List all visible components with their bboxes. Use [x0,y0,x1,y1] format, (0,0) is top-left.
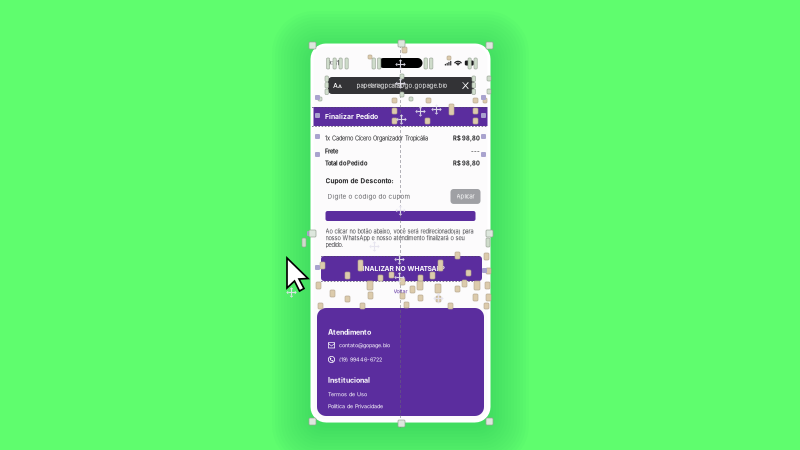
staticText: contato@gopage.bio [339,342,390,349]
button[interactable]: FINALIZAR NO WHATSAPP [321,256,482,281]
button[interactable]: Close [461,81,469,89]
staticText: Institucional [328,376,370,384]
staticText: FINALIZAR NO WHATSAPP [358,264,444,273]
staticText: Atendimento [328,328,371,336]
staticText: Política de Privacidade [328,403,383,410]
staticText: Digite o código do cupom [327,193,409,200]
staticText: Cupom de Desconto: [325,177,393,185]
button[interactable]: Política de Privacidade [328,403,383,410]
staticText: --- [471,148,480,155]
button[interactable]: Aplicar [450,189,480,204]
button[interactable]: Voltar [312,288,489,295]
staticText: 1x Caderno Cícero Organizador Tropicália [325,135,428,142]
staticText: Voltar [393,288,407,295]
staticText: Total do Pedido [325,160,367,167]
staticText: Ao clicar no botão abaixo, você será red… [325,228,473,248]
staticText: Frete [325,148,338,155]
staticText: Termos de Uso [328,391,367,398]
staticText: R$ 98,80 [453,135,480,142]
staticText: R$ 98,80 [453,160,480,167]
staticText: 9:41 [327,59,340,67]
staticText: Aplicar [456,193,474,200]
staticText: papelariagpcatalogo.gopage.bio [356,82,447,89]
staticText: (19) 99446-6722 [339,356,382,363]
button[interactable]: Text size [333,81,343,90]
staticText: Finalizar Pedido [325,112,378,121]
button[interactable]: Termos de Uso [328,391,367,398]
